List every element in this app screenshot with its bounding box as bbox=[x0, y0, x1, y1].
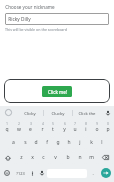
staticText: Ricky Dilly bbox=[8, 16, 31, 23]
staticText: This will be visible on the scoreboard bbox=[5, 27, 67, 32]
button[interactable]: n bbox=[74, 151, 85, 164]
button[interactable]: 8 bbox=[81, 121, 91, 134]
button[interactable]: Clucky bbox=[44, 106, 72, 119]
button[interactable]: Shift bbox=[1, 151, 15, 164]
staticText: 7 bbox=[74, 122, 76, 126]
button[interactable]: 3 bbox=[25, 121, 36, 134]
staticText: z bbox=[20, 154, 23, 161]
staticText: l bbox=[101, 139, 103, 146]
staticText: w bbox=[17, 126, 21, 133]
staticText: ?123 bbox=[16, 171, 25, 176]
staticText: b bbox=[66, 154, 70, 161]
button[interactable]: 0 bbox=[103, 121, 113, 134]
staticText: 0 bbox=[107, 122, 109, 126]
button[interactable]: a bbox=[8, 136, 19, 149]
button[interactable]: 5 bbox=[48, 121, 58, 134]
staticText: 4 bbox=[42, 122, 44, 126]
button[interactable]: Voice typing options bbox=[0, 106, 16, 119]
button[interactable]: x bbox=[27, 151, 37, 164]
staticText: m bbox=[89, 154, 94, 161]
button[interactable]: 9 bbox=[92, 121, 102, 134]
staticText: d bbox=[34, 139, 38, 146]
staticText: e bbox=[29, 126, 32, 133]
staticText: 9 bbox=[96, 122, 98, 126]
staticText: Clucky bbox=[51, 110, 65, 116]
button[interactable]: Emoji bbox=[1, 166, 12, 180]
staticText: x bbox=[31, 154, 34, 161]
staticText: u bbox=[73, 126, 77, 133]
staticText: f bbox=[46, 139, 48, 146]
staticText: 5 bbox=[52, 122, 54, 126]
staticText: i bbox=[85, 126, 87, 133]
staticText: c bbox=[42, 154, 45, 161]
button[interactable]: Click me! bbox=[42, 86, 72, 97]
button[interactable]: ?123 bbox=[13, 166, 27, 180]
staticText: h bbox=[67, 139, 71, 146]
button[interactable]: 1 bbox=[1, 121, 12, 134]
button[interactable]: d bbox=[31, 136, 41, 149]
staticText: 3 bbox=[30, 122, 32, 126]
button[interactable]: h bbox=[64, 136, 74, 149]
staticText: v bbox=[54, 154, 57, 161]
staticText: s bbox=[24, 139, 27, 146]
button[interactable]: Ricky Dilly bbox=[5, 13, 109, 25]
staticText: Clicky bbox=[24, 110, 36, 116]
button[interactable]: c bbox=[38, 151, 49, 164]
staticText: k bbox=[90, 139, 93, 146]
button[interactable]: m bbox=[86, 151, 97, 164]
button[interactable]: g bbox=[53, 136, 63, 149]
staticText: . bbox=[92, 170, 94, 176]
staticText: Choose your nickname bbox=[5, 4, 55, 10]
button[interactable]: Voice input bbox=[37, 166, 46, 180]
button[interactable]: 2 bbox=[13, 121, 24, 134]
button[interactable]: l bbox=[97, 136, 107, 149]
button[interactable]: Settings bbox=[28, 166, 36, 180]
button[interactable]: b bbox=[62, 151, 73, 164]
staticText: a bbox=[12, 139, 15, 146]
staticText: Click the bbox=[78, 110, 96, 116]
button[interactable]: 7 bbox=[70, 121, 80, 134]
staticText: 1 bbox=[6, 122, 8, 126]
staticText: r bbox=[41, 126, 44, 133]
button[interactable]: j bbox=[75, 136, 85, 149]
button[interactable]: . bbox=[88, 166, 97, 180]
button[interactable]: 6 bbox=[59, 121, 69, 134]
staticText: n bbox=[78, 154, 82, 161]
staticText: o bbox=[95, 126, 99, 133]
button[interactable]: Backspace bbox=[98, 151, 113, 164]
staticText: t bbox=[52, 126, 54, 133]
staticText: q bbox=[5, 126, 9, 133]
button[interactable]: f bbox=[42, 136, 52, 149]
button[interactable]: Click the bbox=[73, 106, 101, 119]
button[interactable]: k bbox=[86, 136, 96, 149]
button[interactable]: Clicky bbox=[16, 106, 43, 119]
staticText: 8 bbox=[85, 122, 87, 126]
staticText: g bbox=[56, 139, 60, 146]
staticText: Click me! bbox=[48, 89, 67, 95]
staticText: y bbox=[63, 126, 66, 133]
button[interactable]: s bbox=[20, 136, 30, 149]
button[interactable]: Enter bbox=[98, 166, 113, 180]
staticText: j bbox=[79, 139, 81, 146]
staticText: 2 bbox=[18, 122, 20, 126]
staticText: p bbox=[106, 126, 110, 133]
button[interactable]: 4 bbox=[37, 121, 47, 134]
button[interactable]: Voice input bbox=[101, 106, 114, 119]
staticText: 6 bbox=[64, 122, 66, 126]
button[interactable]: v bbox=[50, 151, 61, 164]
button[interactable]: z bbox=[16, 151, 26, 164]
